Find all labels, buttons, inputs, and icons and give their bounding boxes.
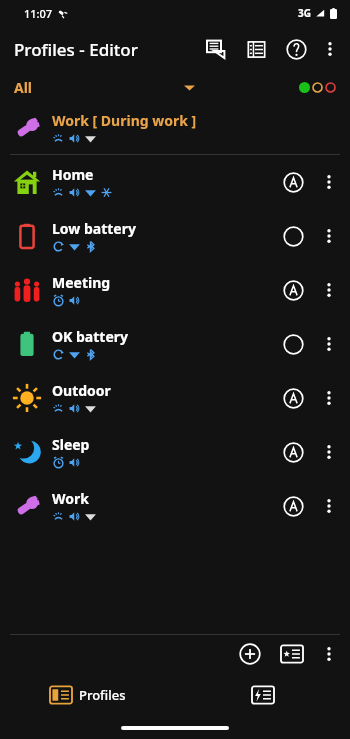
staticText: All [14, 78, 33, 97]
button[interactable]: More options [312, 219, 346, 253]
button[interactable]: More options [312, 381, 346, 415]
button[interactable]: More options [312, 327, 346, 361]
staticText: OK battery [52, 327, 129, 346]
button[interactable]: Manual [276, 327, 310, 361]
button[interactable]: Profile notes [199, 32, 233, 66]
button[interactable]: Automatic [276, 489, 310, 523]
button[interactable]: Work [ During work ] [0, 102, 350, 154]
button[interactable]: More options [312, 435, 346, 469]
staticText: Home [52, 165, 94, 184]
staticText: Profiles [79, 686, 126, 704]
button[interactable]: Automatic [276, 435, 310, 469]
button[interactable]: Events [175, 673, 350, 717]
button[interactable]: More options [312, 165, 346, 199]
button[interactable]: Automatic [276, 165, 310, 199]
button[interactable]: Add profile [232, 636, 268, 672]
button[interactable]: List view [239, 32, 273, 66]
staticText: Outdoor [52, 381, 111, 400]
button[interactable]: Work [0, 479, 350, 533]
button[interactable]: Manual [276, 219, 310, 253]
staticText: Work [ During work ] [52, 111, 197, 130]
button[interactable]: Meeting [0, 263, 350, 317]
button[interactable]: OK battery [0, 317, 350, 371]
staticText: Work [52, 489, 89, 508]
button[interactable]: Profiles [0, 673, 175, 717]
button[interactable]: Home [0, 155, 350, 209]
button[interactable]: More options [312, 637, 346, 671]
staticText: 11:07 [24, 6, 53, 21]
button[interactable]: Outdoor [0, 371, 350, 425]
button[interactable]: Automatic [276, 381, 310, 415]
button[interactable]: More options [312, 273, 346, 307]
button[interactable]: Presets [274, 636, 310, 672]
staticText: Meeting [52, 273, 111, 292]
button[interactable]: Help [279, 32, 313, 66]
button[interactable]: More options [313, 32, 347, 66]
staticText: Low battery [52, 219, 136, 238]
button[interactable]: Sleep [0, 425, 350, 479]
staticText: Profiles - Editor [14, 38, 138, 61]
button[interactable]: Low battery [0, 209, 350, 263]
button[interactable]: Automatic [276, 273, 310, 307]
staticText: Sleep [52, 435, 90, 454]
staticText: 3G [298, 6, 311, 20]
button[interactable]: All [0, 72, 350, 102]
button[interactable]: More options [312, 489, 346, 523]
